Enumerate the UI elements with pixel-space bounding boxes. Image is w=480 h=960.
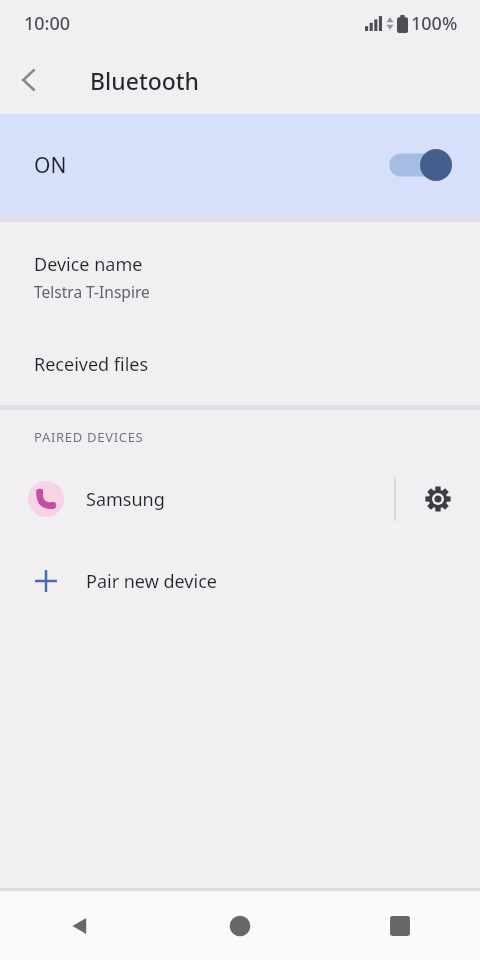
- button[interactable]: Received files: [0, 346, 480, 405]
- staticText: ON: [34, 151, 67, 180]
- staticText: Telstra T-Inspire: [34, 281, 150, 302]
- button[interactable]: ON: [0, 114, 480, 216]
- staticText: Received files: [34, 352, 149, 377]
- button[interactable]: Back: [0, 51, 58, 109]
- staticText: Bluetooth: [90, 65, 200, 96]
- button[interactable]: Samsung: [0, 468, 394, 530]
- button[interactable]: Device name: [0, 222, 480, 320]
- staticText: Device name: [34, 252, 143, 277]
- button[interactable]: Device settings: [396, 468, 480, 530]
- staticText: Pair new device: [86, 569, 217, 594]
- staticText: Samsung: [86, 487, 165, 512]
- staticText: PAIRED DEVICES: [34, 428, 144, 446]
- button[interactable]: Home: [160, 891, 320, 960]
- button[interactable]: Back: [0, 891, 160, 960]
- staticText: 100%: [411, 11, 458, 36]
- button[interactable]: Bluetooth on: [388, 145, 454, 185]
- staticText: 10:00: [24, 11, 71, 36]
- button[interactable]: Recents: [320, 891, 480, 960]
- button[interactable]: Pair new device: [0, 552, 480, 610]
